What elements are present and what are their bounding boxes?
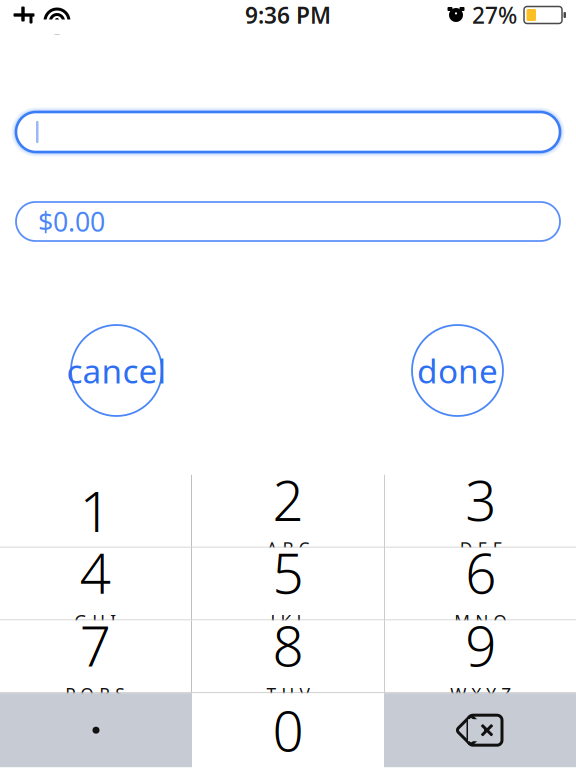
button[interactable]: 8: [192, 620, 384, 692]
staticText: P Q R S: [65, 683, 125, 706]
staticText: 6: [465, 536, 496, 609]
button[interactable]: 0: [192, 693, 384, 767]
staticText: G H I: [74, 610, 116, 633]
staticText: 27%: [472, 0, 517, 30]
staticText: 0: [272, 694, 303, 766]
staticText: 9: [465, 609, 496, 682]
button[interactable]: 9: [385, 620, 576, 692]
staticText: 1: [80, 474, 111, 547]
button[interactable]: 3: [385, 475, 576, 547]
staticText: D E F: [460, 537, 502, 560]
staticText: 4: [80, 536, 111, 609]
staticText: cancel: [66, 348, 166, 393]
button[interactable]: done: [394, 324, 521, 417]
staticText: 3: [465, 463, 496, 536]
staticText: 2: [272, 463, 303, 536]
staticText: 9:36 PM: [245, 0, 331, 30]
button[interactable]: 6: [385, 548, 576, 620]
button[interactable]: 5: [192, 548, 384, 620]
staticText: T U V: [266, 683, 309, 706]
button[interactable]: Delete: [384, 693, 576, 767]
button[interactable]: 7: [0, 620, 191, 692]
button[interactable]: 4: [0, 548, 191, 620]
button[interactable]: Decimal point: [0, 693, 192, 767]
staticText: 5: [272, 536, 303, 609]
staticText: J K L: [270, 610, 305, 633]
staticText: done: [417, 348, 498, 393]
staticText: A B C: [266, 537, 309, 560]
button[interactable]: cancel: [53, 324, 180, 417]
staticText: 8: [272, 609, 303, 682]
button[interactable]: $0.00: [16, 202, 560, 241]
staticText: W X Y Z: [450, 683, 511, 706]
button[interactable]: 2: [192, 475, 384, 547]
button[interactable]: 1: [0, 475, 191, 547]
staticText: M N O: [454, 610, 507, 633]
staticText: 7: [80, 609, 111, 682]
staticText: $0.00: [38, 204, 105, 239]
button[interactable]: Name field: [16, 108, 560, 156]
